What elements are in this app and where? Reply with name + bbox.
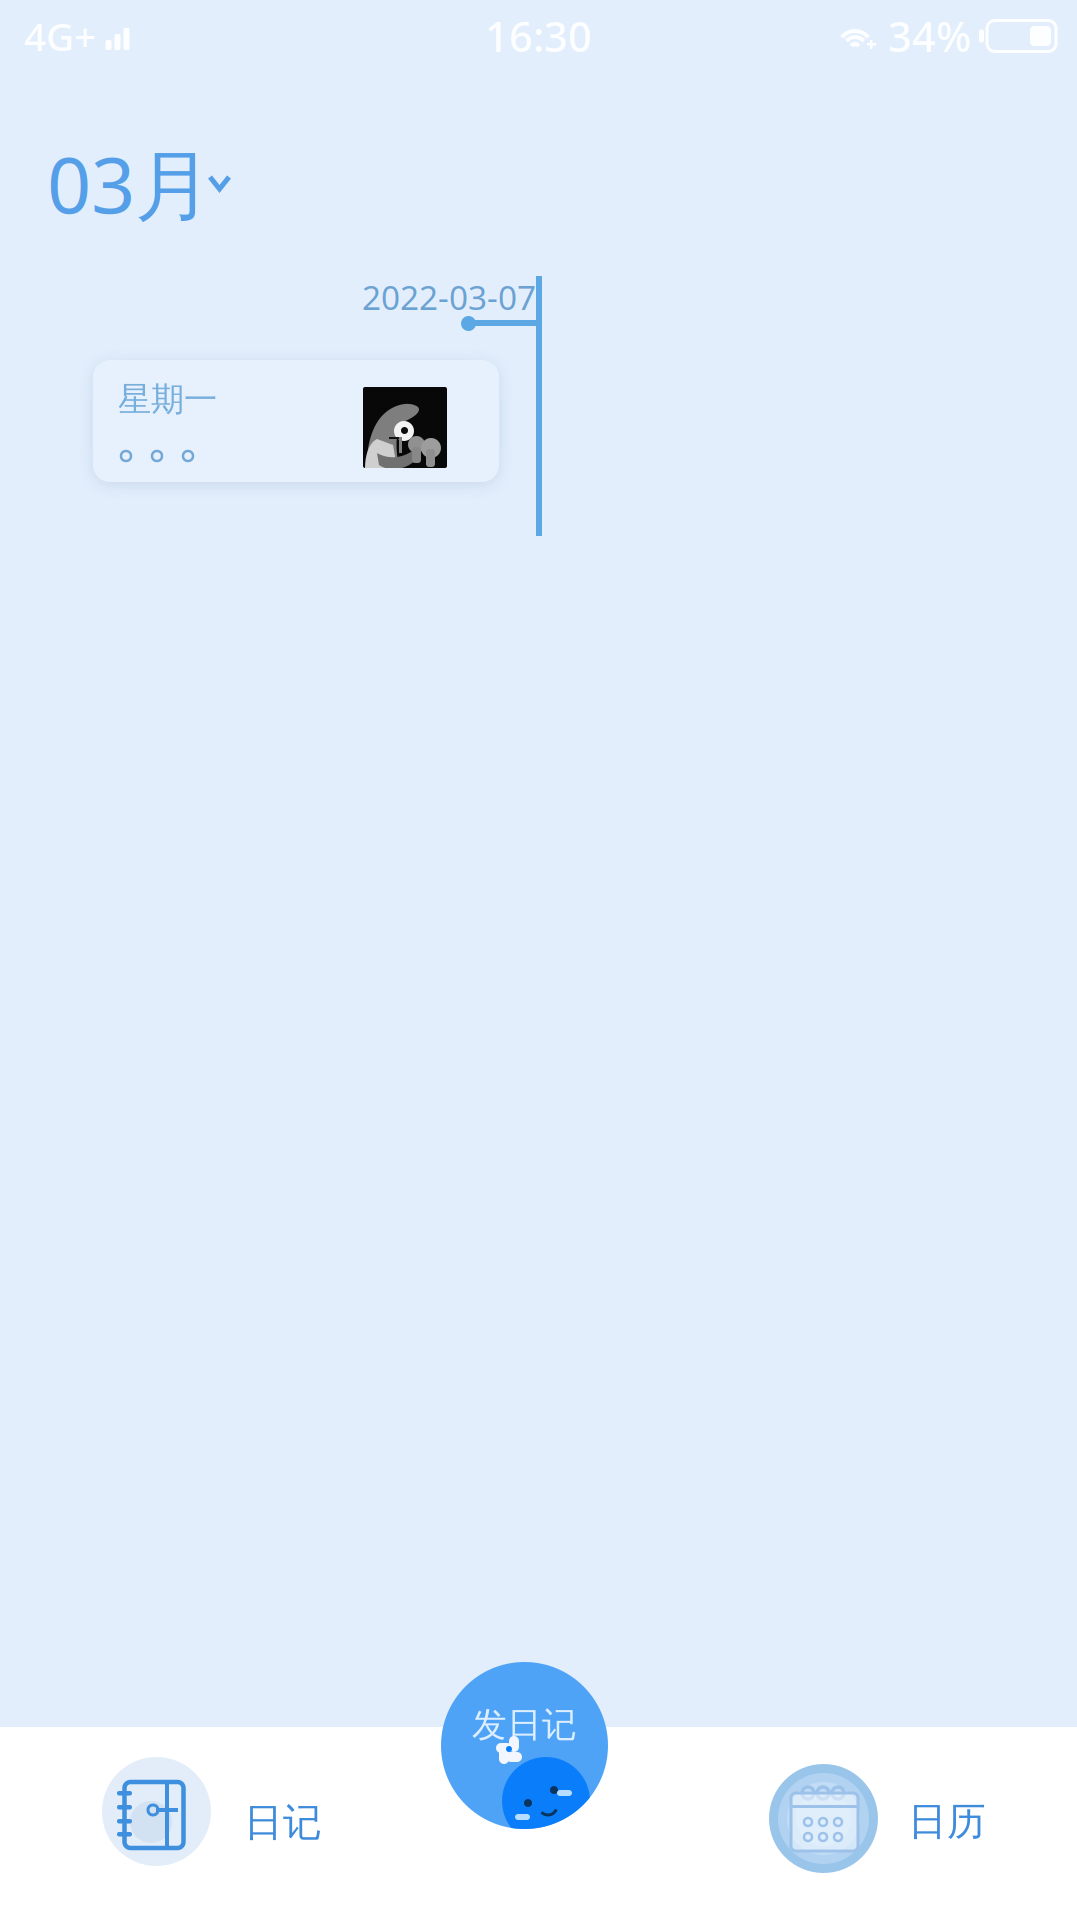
staticText: 星期一 — [118, 379, 217, 420]
staticText: 16:30 — [485, 9, 592, 63]
button[interactable]: 发日记 — [441, 1662, 608, 1829]
button[interactable]: 03月 — [0, 118, 300, 214]
button[interactable]: 星期一 — [93, 360, 499, 482]
staticText: 03月 — [47, 132, 212, 235]
staticText: 日记 — [244, 1799, 322, 1846]
staticText: 2022-03-07 — [362, 275, 536, 319]
staticText: 日历 — [908, 1798, 986, 1845]
button[interactable]: 日记 — [102, 1727, 362, 1897]
staticText: 4G+ — [24, 10, 96, 62]
staticText: 发日记 — [472, 1704, 577, 1746]
staticText: 34% — [888, 9, 971, 63]
button[interactable]: 日历 — [769, 1727, 1029, 1897]
